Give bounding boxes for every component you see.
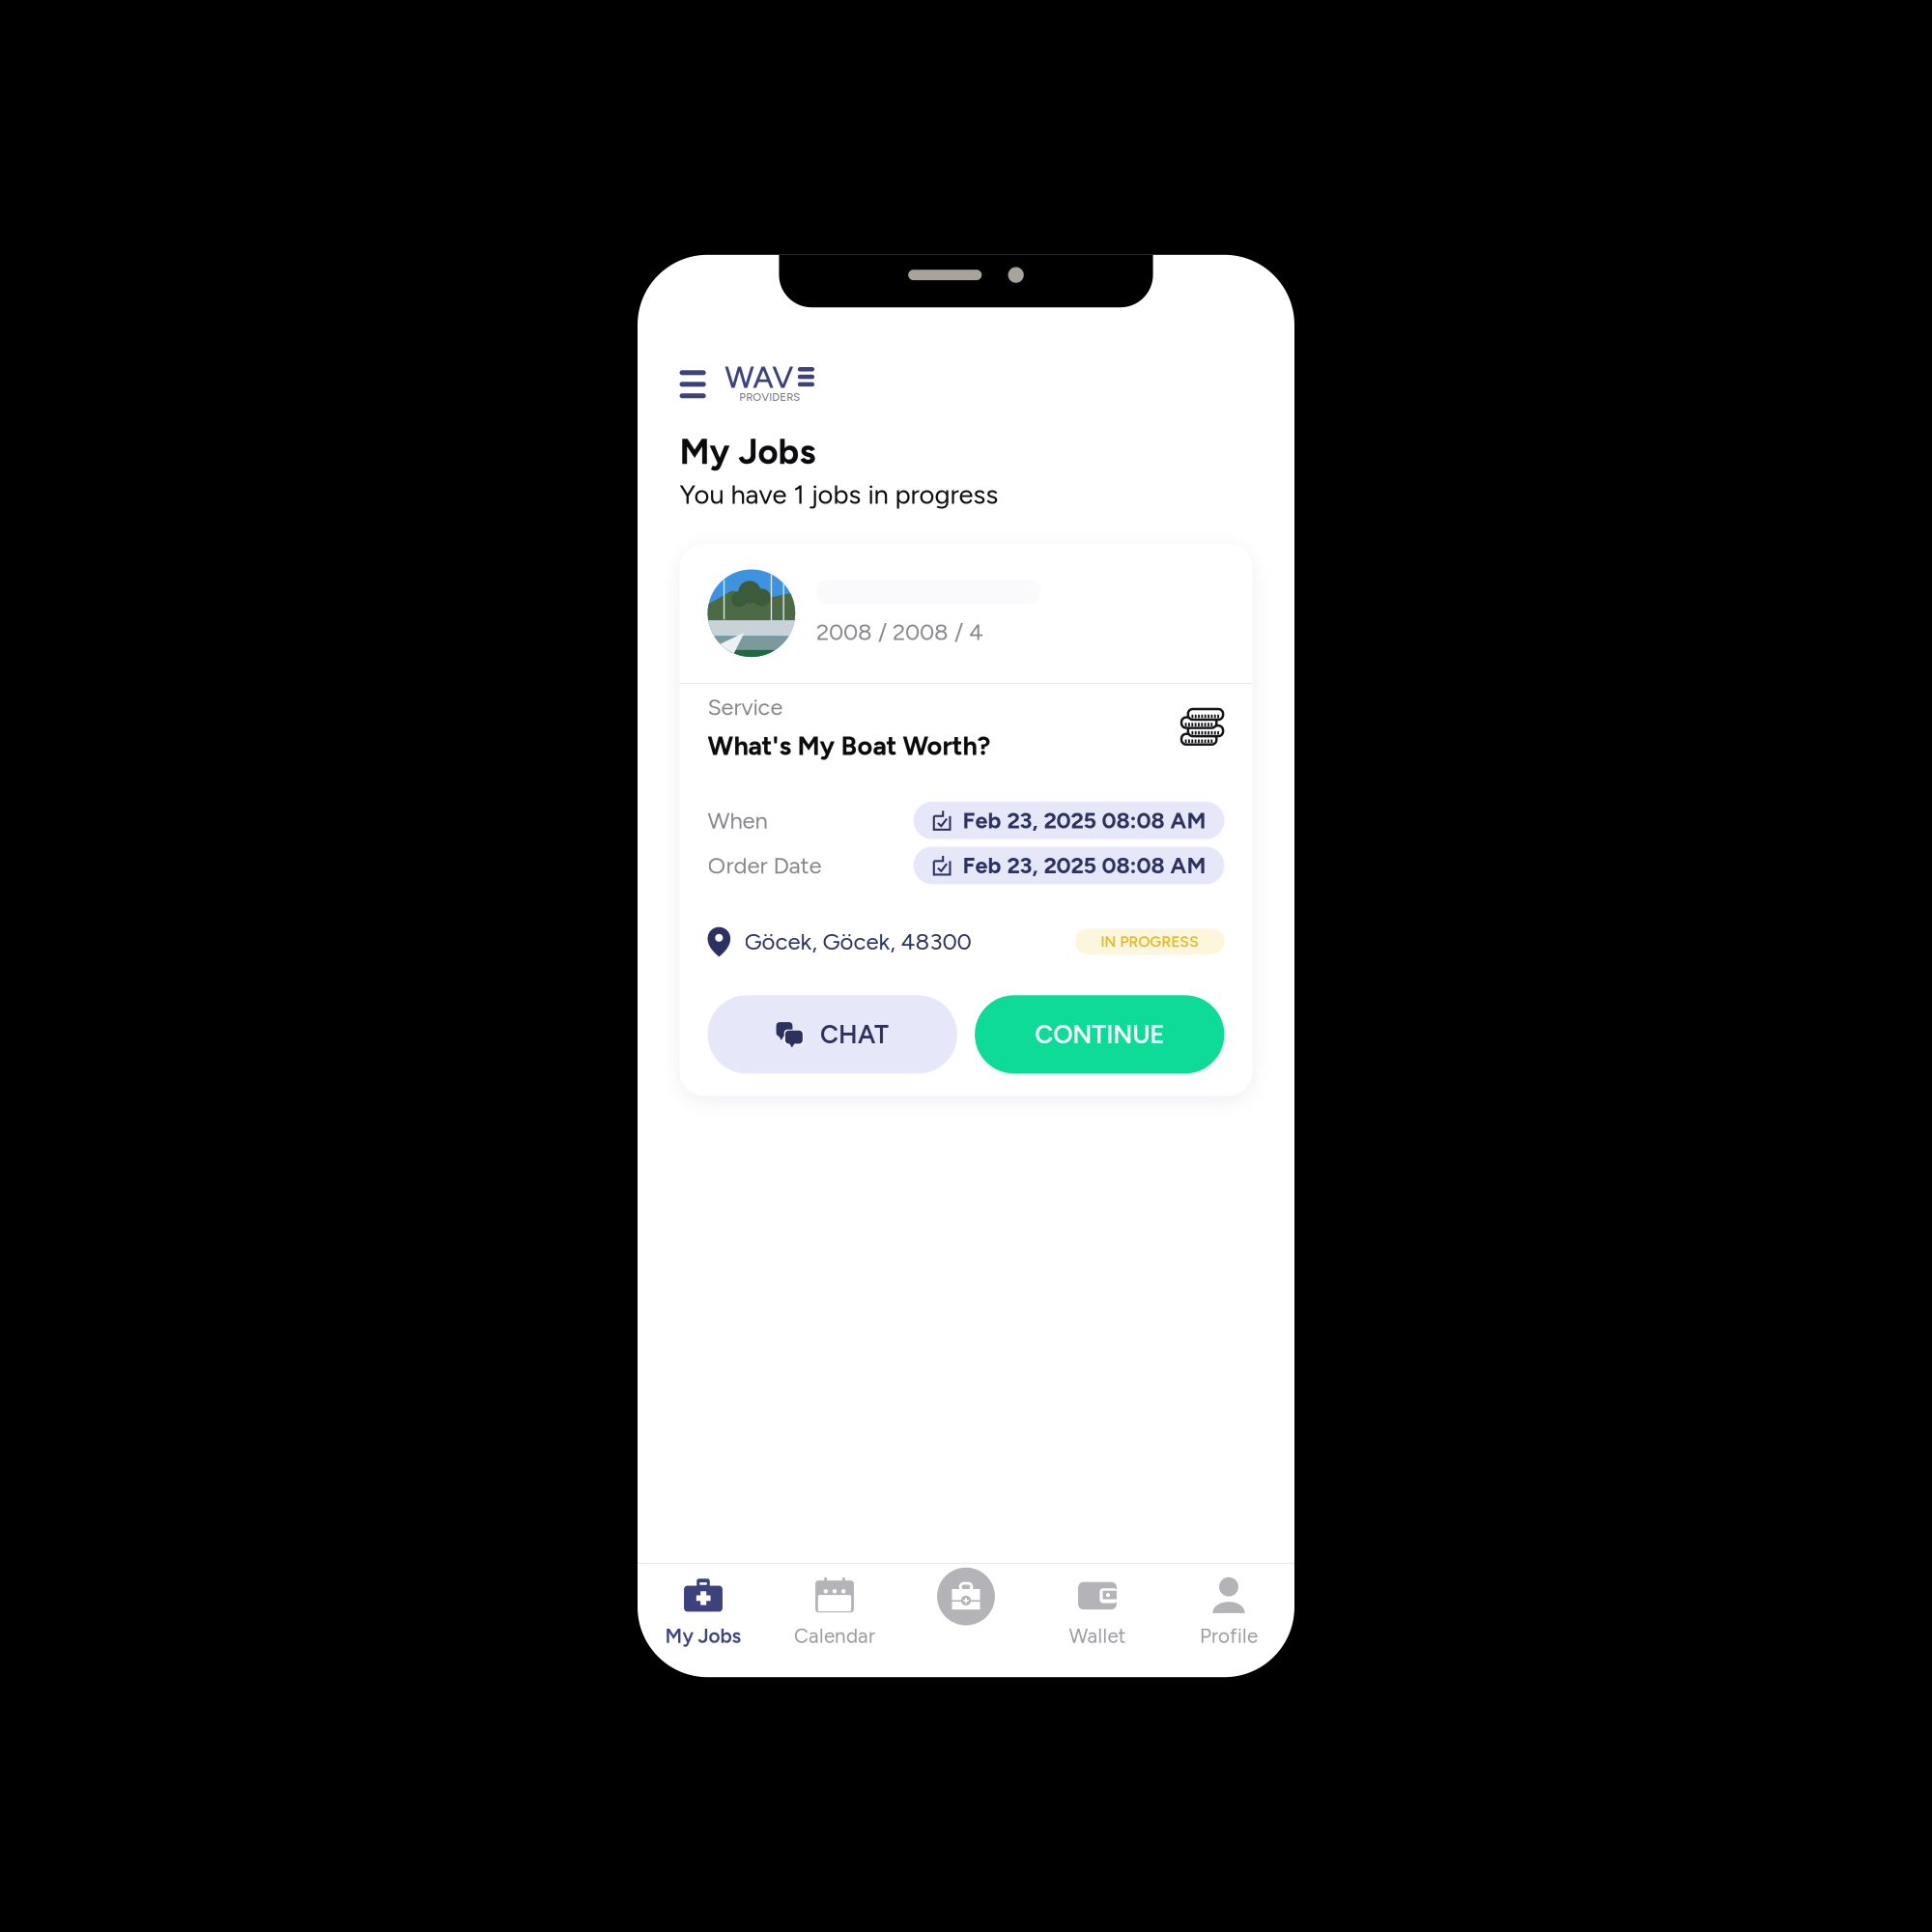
staticText: Profile bbox=[1200, 1624, 1258, 1648]
button[interactable]: Profile bbox=[1163, 1564, 1294, 1677]
staticText: Service bbox=[708, 694, 783, 721]
staticText: Göcek, Göcek, 48300 bbox=[744, 928, 971, 955]
staticText: You have 1 jobs in progress bbox=[680, 479, 998, 510]
staticText: Calendar bbox=[794, 1624, 875, 1648]
button[interactable]: Wallet bbox=[1032, 1564, 1163, 1677]
button[interactable]: CONTINUE bbox=[975, 995, 1224, 1074]
button[interactable]: Menu bbox=[680, 366, 814, 404]
staticText: Order Date bbox=[708, 852, 822, 879]
staticText: Feb 23, 2025 08:08 AM bbox=[963, 807, 1206, 834]
staticText: Wallet bbox=[1069, 1624, 1126, 1648]
staticText: WAV bbox=[725, 359, 793, 396]
staticText: CONTINUE bbox=[1035, 1019, 1164, 1049]
button[interactable]: CHAT bbox=[708, 995, 957, 1074]
staticText: My Jobs bbox=[680, 431, 816, 473]
staticText: When bbox=[708, 807, 767, 834]
staticText: PROVIDERS bbox=[739, 390, 800, 403]
staticText: Feb 23, 2025 08:08 AM bbox=[963, 852, 1206, 879]
button[interactable]: Add job bbox=[900, 1564, 1032, 1677]
staticText: CHAT bbox=[820, 1019, 889, 1049]
staticText: What's My Boat Worth? bbox=[708, 730, 991, 761]
staticText: My Jobs bbox=[665, 1624, 741, 1648]
button[interactable]: My Jobs bbox=[638, 1564, 769, 1677]
staticText: 2008 / 2008 / 4 bbox=[816, 618, 983, 646]
staticText: IN PROGRESS bbox=[1100, 932, 1199, 951]
button[interactable]: Calendar bbox=[769, 1564, 900, 1677]
